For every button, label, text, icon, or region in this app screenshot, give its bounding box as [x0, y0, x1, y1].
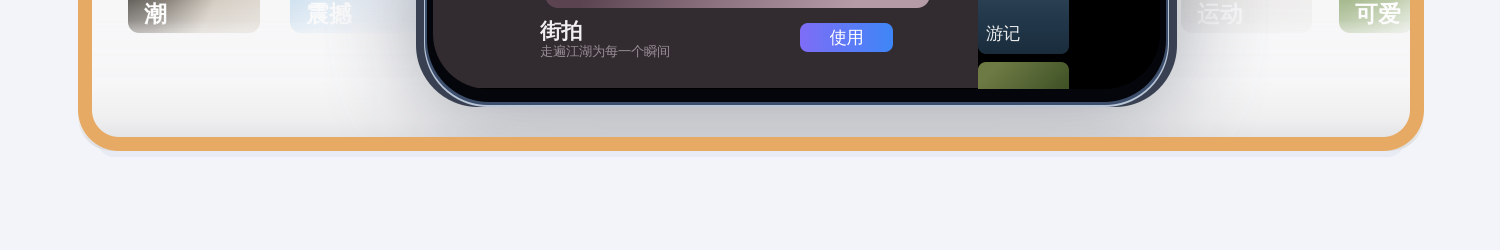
- staticText: 使用: [829, 27, 863, 48]
- button[interactable]: 可爱: [1339, 0, 1413, 33]
- button[interactable]: 街拍: [452, 0, 584, 33]
- button[interactable]: 治愈: [938, 0, 1070, 33]
- button[interactable]: 使用: [800, 23, 893, 52]
- button[interactable]: 生活: [776, 0, 908, 33]
- staticText: 震撼: [306, 0, 352, 28]
- button[interactable]: 潮: [128, 0, 260, 33]
- button[interactable]: 夜色: [614, 0, 746, 33]
- staticText: 潮: [144, 0, 167, 28]
- staticText: 游记: [986, 23, 1020, 44]
- staticText: 运动: [1197, 0, 1243, 28]
- staticText: 走遍江湖为每一个瞬间: [540, 43, 670, 57]
- staticText: 可爱: [1355, 0, 1401, 28]
- staticText: 夜色: [630, 0, 676, 28]
- staticText: 治愈: [954, 0, 1000, 28]
- staticText: 生活: [792, 0, 838, 28]
- button[interactable]: 震撼: [290, 0, 422, 33]
- button[interactable]: 运动: [1181, 0, 1312, 33]
- staticText: 街拍: [540, 18, 582, 40]
- button[interactable]: [978, 62, 1069, 108]
- button[interactable]: 游记: [978, 0, 1069, 54]
